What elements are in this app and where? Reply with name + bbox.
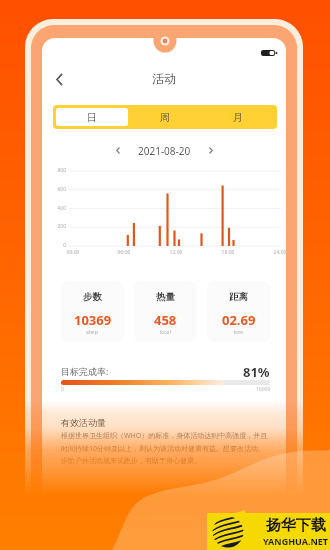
staticText: 热量 xyxy=(156,291,175,303)
staticText: 12:00 xyxy=(166,249,186,256)
staticText: 800 xyxy=(50,167,66,174)
staticText: 0 xyxy=(61,386,64,393)
staticText: 24:00 xyxy=(270,249,290,256)
staticText: kcal xyxy=(160,328,171,336)
staticText: 81% xyxy=(243,363,270,378)
staticText: 有效活动量 xyxy=(61,417,106,428)
staticText: 活动 xyxy=(152,71,176,86)
staticText: 18:00 xyxy=(218,249,238,256)
staticText: 06:00 xyxy=(114,249,134,256)
button[interactable]: 距离 xyxy=(207,281,270,342)
staticText: 月 xyxy=(233,111,243,124)
button[interactable]: 月 xyxy=(201,108,274,126)
staticText: 458 xyxy=(154,311,177,329)
staticText: 扬华下载 xyxy=(266,516,326,535)
staticText: 10369 xyxy=(74,311,112,329)
staticText: 日 xyxy=(87,111,97,124)
staticText: 10000 xyxy=(256,386,271,393)
staticText: 00:00 xyxy=(63,249,83,256)
button[interactable]: 步数 xyxy=(61,281,124,342)
staticText: YANGHUA.NET xyxy=(263,535,329,547)
staticText: 0 xyxy=(50,242,66,249)
staticText: km xyxy=(234,328,243,336)
staticText: 距离 xyxy=(229,291,248,303)
button[interactable]: 周 xyxy=(128,108,201,126)
staticText: 目标完成率: xyxy=(61,365,109,377)
staticText: 200 xyxy=(50,223,66,230)
staticText: 根据世界卫生组织（WHO）的标准，身体活动达到中高强度，并且时间持续10分钟及以… xyxy=(61,431,270,465)
button[interactable]: Previous day xyxy=(110,143,126,158)
staticText: 2021-08-20 xyxy=(138,144,191,158)
staticText: 02.69 xyxy=(222,311,256,329)
staticText: 周 xyxy=(160,111,170,124)
button[interactable]: Back xyxy=(46,65,72,93)
staticText: 400 xyxy=(50,205,66,212)
staticText: 600 xyxy=(50,186,66,193)
staticText: 步数 xyxy=(83,291,102,303)
button[interactable]: 热量 xyxy=(134,281,197,342)
staticText: step xyxy=(86,328,99,336)
button[interactable]: Next day xyxy=(203,143,219,158)
button[interactable]: 日 xyxy=(56,108,128,126)
